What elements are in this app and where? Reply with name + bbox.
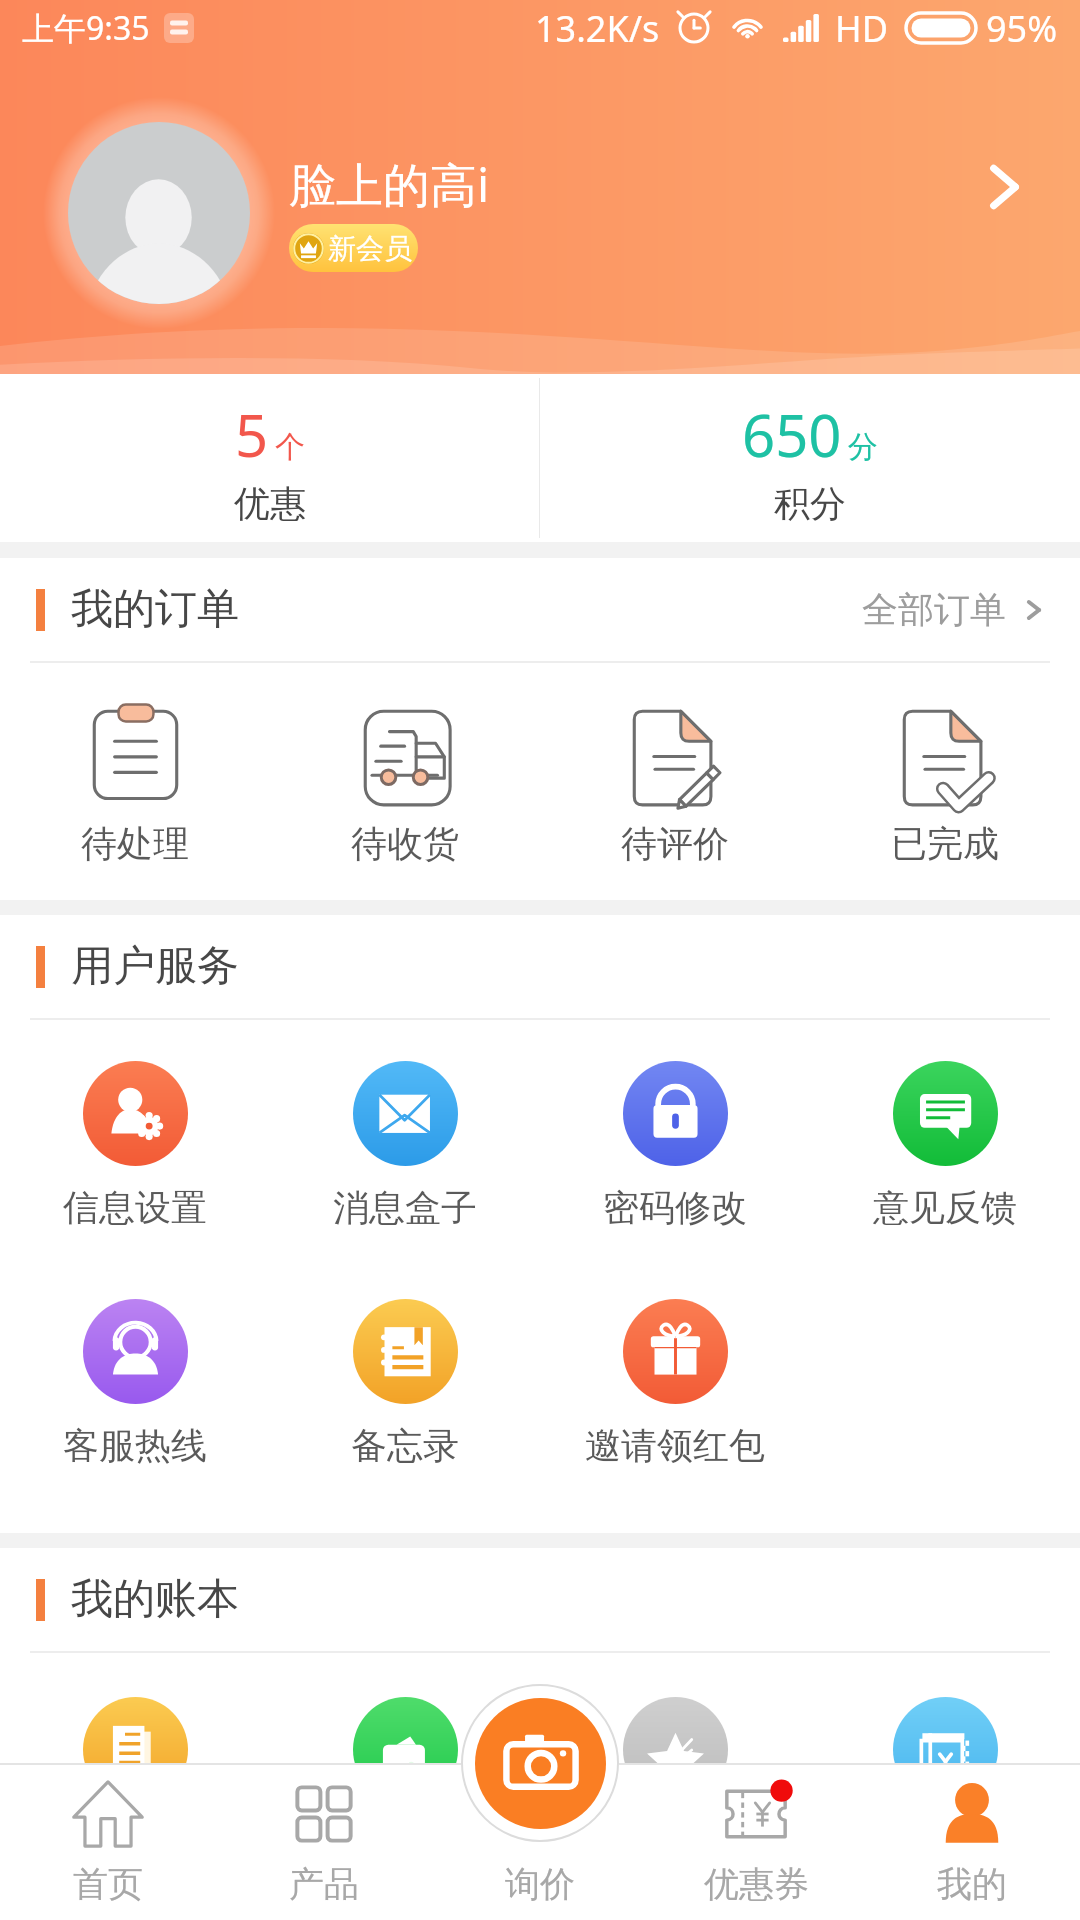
button[interactable]: [270, 1653, 540, 1891]
button[interactable]: 新会员: [293, 224, 412, 272]
staticText: 650: [742, 395, 842, 474]
staticText: 意见反馈: [873, 1185, 1017, 1230]
staticText: 新会员: [328, 231, 412, 266]
button[interactable]: 5: [0, 374, 539, 542]
button[interactable]: 首页: [0, 1765, 216, 1920]
button[interactable]: 我的: [864, 1765, 1080, 1920]
button[interactable]: [810, 1653, 1080, 1891]
staticText: 邀请领红包: [585, 1423, 765, 1468]
staticText: 积分: [774, 481, 846, 526]
button[interactable]: 邀请领红包: [540, 1258, 810, 1496]
staticText: 我的订单: [71, 583, 239, 636]
staticText: 用户服务: [71, 940, 239, 993]
staticText: 5: [235, 395, 269, 474]
button[interactable]: 全部订单: [862, 558, 1050, 661]
staticText: 个: [275, 428, 305, 466]
staticText: 脸上的高i: [289, 152, 490, 216]
staticText: 上午9:35: [22, 6, 150, 50]
button[interactable]: 待处理: [0, 663, 270, 900]
staticText: 优惠: [234, 481, 306, 526]
staticText: 产品: [289, 1862, 359, 1906]
staticText: 95%: [986, 4, 1058, 53]
staticText: 待评价: [621, 821, 729, 866]
staticText: 优惠券: [704, 1862, 809, 1906]
staticText: 我的账本: [71, 1573, 239, 1626]
staticText: 待处理: [81, 821, 189, 866]
button[interactable]: 密码修改: [540, 1020, 810, 1258]
button[interactable]: [0, 1653, 270, 1891]
button[interactable]: 650: [540, 374, 1080, 542]
staticText: 询价: [505, 1862, 575, 1906]
button[interactable]: 消息盒子: [270, 1020, 540, 1258]
staticText: HD: [835, 4, 888, 53]
staticText: 密码修改: [603, 1185, 747, 1230]
button[interactable]: 信息设置: [0, 1020, 270, 1258]
button[interactable]: [540, 1653, 810, 1891]
staticText: 备忘录: [351, 1423, 459, 1468]
staticText: 全部订单: [862, 587, 1006, 632]
button[interactable]: 客服热线: [0, 1258, 270, 1496]
button[interactable]: 询价: [432, 1765, 648, 1920]
staticText: 消息盒子: [333, 1185, 477, 1230]
button[interactable]: 待收货: [270, 663, 540, 900]
staticText: 待收货: [351, 821, 459, 866]
button[interactable]: 意见反馈: [810, 1020, 1080, 1258]
staticText: 信息设置: [63, 1185, 207, 1230]
button[interactable]: 优惠券: [648, 1765, 864, 1920]
button[interactable]: 已完成: [810, 663, 1080, 900]
staticText: 首页: [73, 1862, 143, 1906]
button[interactable]: 询价拍照: [475, 1698, 606, 1829]
staticText: 我的: [937, 1862, 1007, 1906]
button[interactable]: 待评价: [540, 663, 810, 900]
staticText: 分: [848, 428, 878, 466]
button[interactable]: 产品: [216, 1765, 432, 1920]
staticText: 已完成: [891, 821, 999, 866]
button[interactable]: 查看个人资料: [956, 139, 1052, 235]
button[interactable]: 备忘录: [270, 1258, 540, 1496]
staticText: 客服热线: [63, 1423, 207, 1468]
staticText: 13.2K/s: [535, 4, 660, 53]
